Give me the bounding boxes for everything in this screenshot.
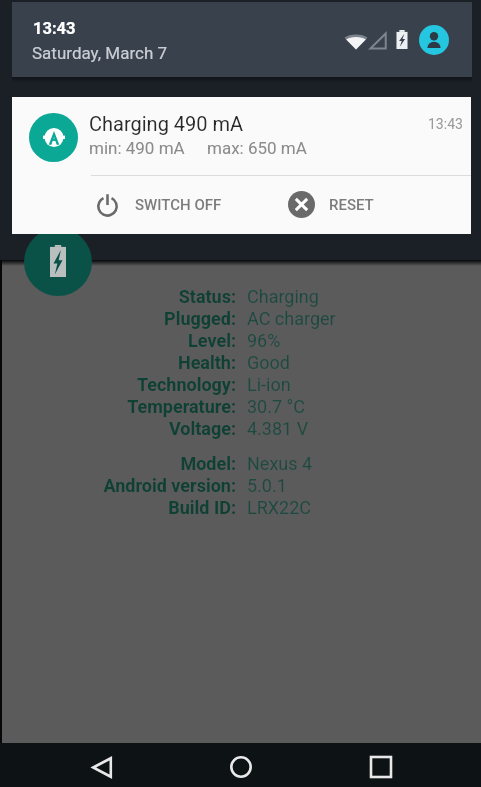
staticText: max: 650 mA	[207, 138, 307, 158]
staticText: 30.7 °C	[247, 396, 305, 417]
staticText: Good	[247, 352, 290, 373]
staticText: Nexus 4	[247, 453, 313, 474]
staticText: RESET	[329, 196, 374, 214]
staticText: min: 490 mA	[89, 138, 185, 158]
button[interactable]: User account	[419, 25, 449, 55]
staticText: 13:43	[33, 19, 76, 38]
staticText: Model:	[180, 453, 236, 474]
staticText: LRX22C	[247, 497, 312, 518]
button[interactable]: Back	[72, 747, 132, 787]
staticText: Li-ion	[247, 374, 291, 395]
staticText: 96%	[247, 330, 281, 351]
staticText: SWITCH OFF	[135, 196, 222, 214]
button[interactable]: Battery status	[24, 228, 92, 296]
staticText: Charging	[247, 286, 319, 307]
button[interactable]	[274, 181, 435, 234]
staticText: 5.0.1	[247, 475, 287, 496]
staticText: Android version:	[103, 475, 236, 496]
button[interactable]	[80, 181, 241, 234]
staticText: 13:43	[428, 116, 463, 132]
staticText: AC charger	[247, 308, 336, 329]
staticText: Charging 490 mA	[89, 112, 244, 135]
button[interactable]: Charging 490 mA	[12, 97, 471, 234]
staticText: Level:	[188, 330, 236, 351]
staticText: Temperature:	[127, 396, 236, 417]
staticText: Technology:	[136, 374, 236, 395]
staticText: Build ID:	[168, 497, 236, 518]
staticText: Health:	[177, 352, 236, 373]
button[interactable]: Home	[211, 747, 271, 787]
staticText: Status:	[178, 286, 236, 307]
staticText: Voltage:	[168, 418, 236, 439]
button[interactable]: Recent apps	[351, 747, 411, 787]
staticText: 4.381 V	[247, 418, 309, 439]
staticText: Saturday, March 7	[32, 43, 168, 63]
staticText: Plugged:	[164, 308, 236, 329]
